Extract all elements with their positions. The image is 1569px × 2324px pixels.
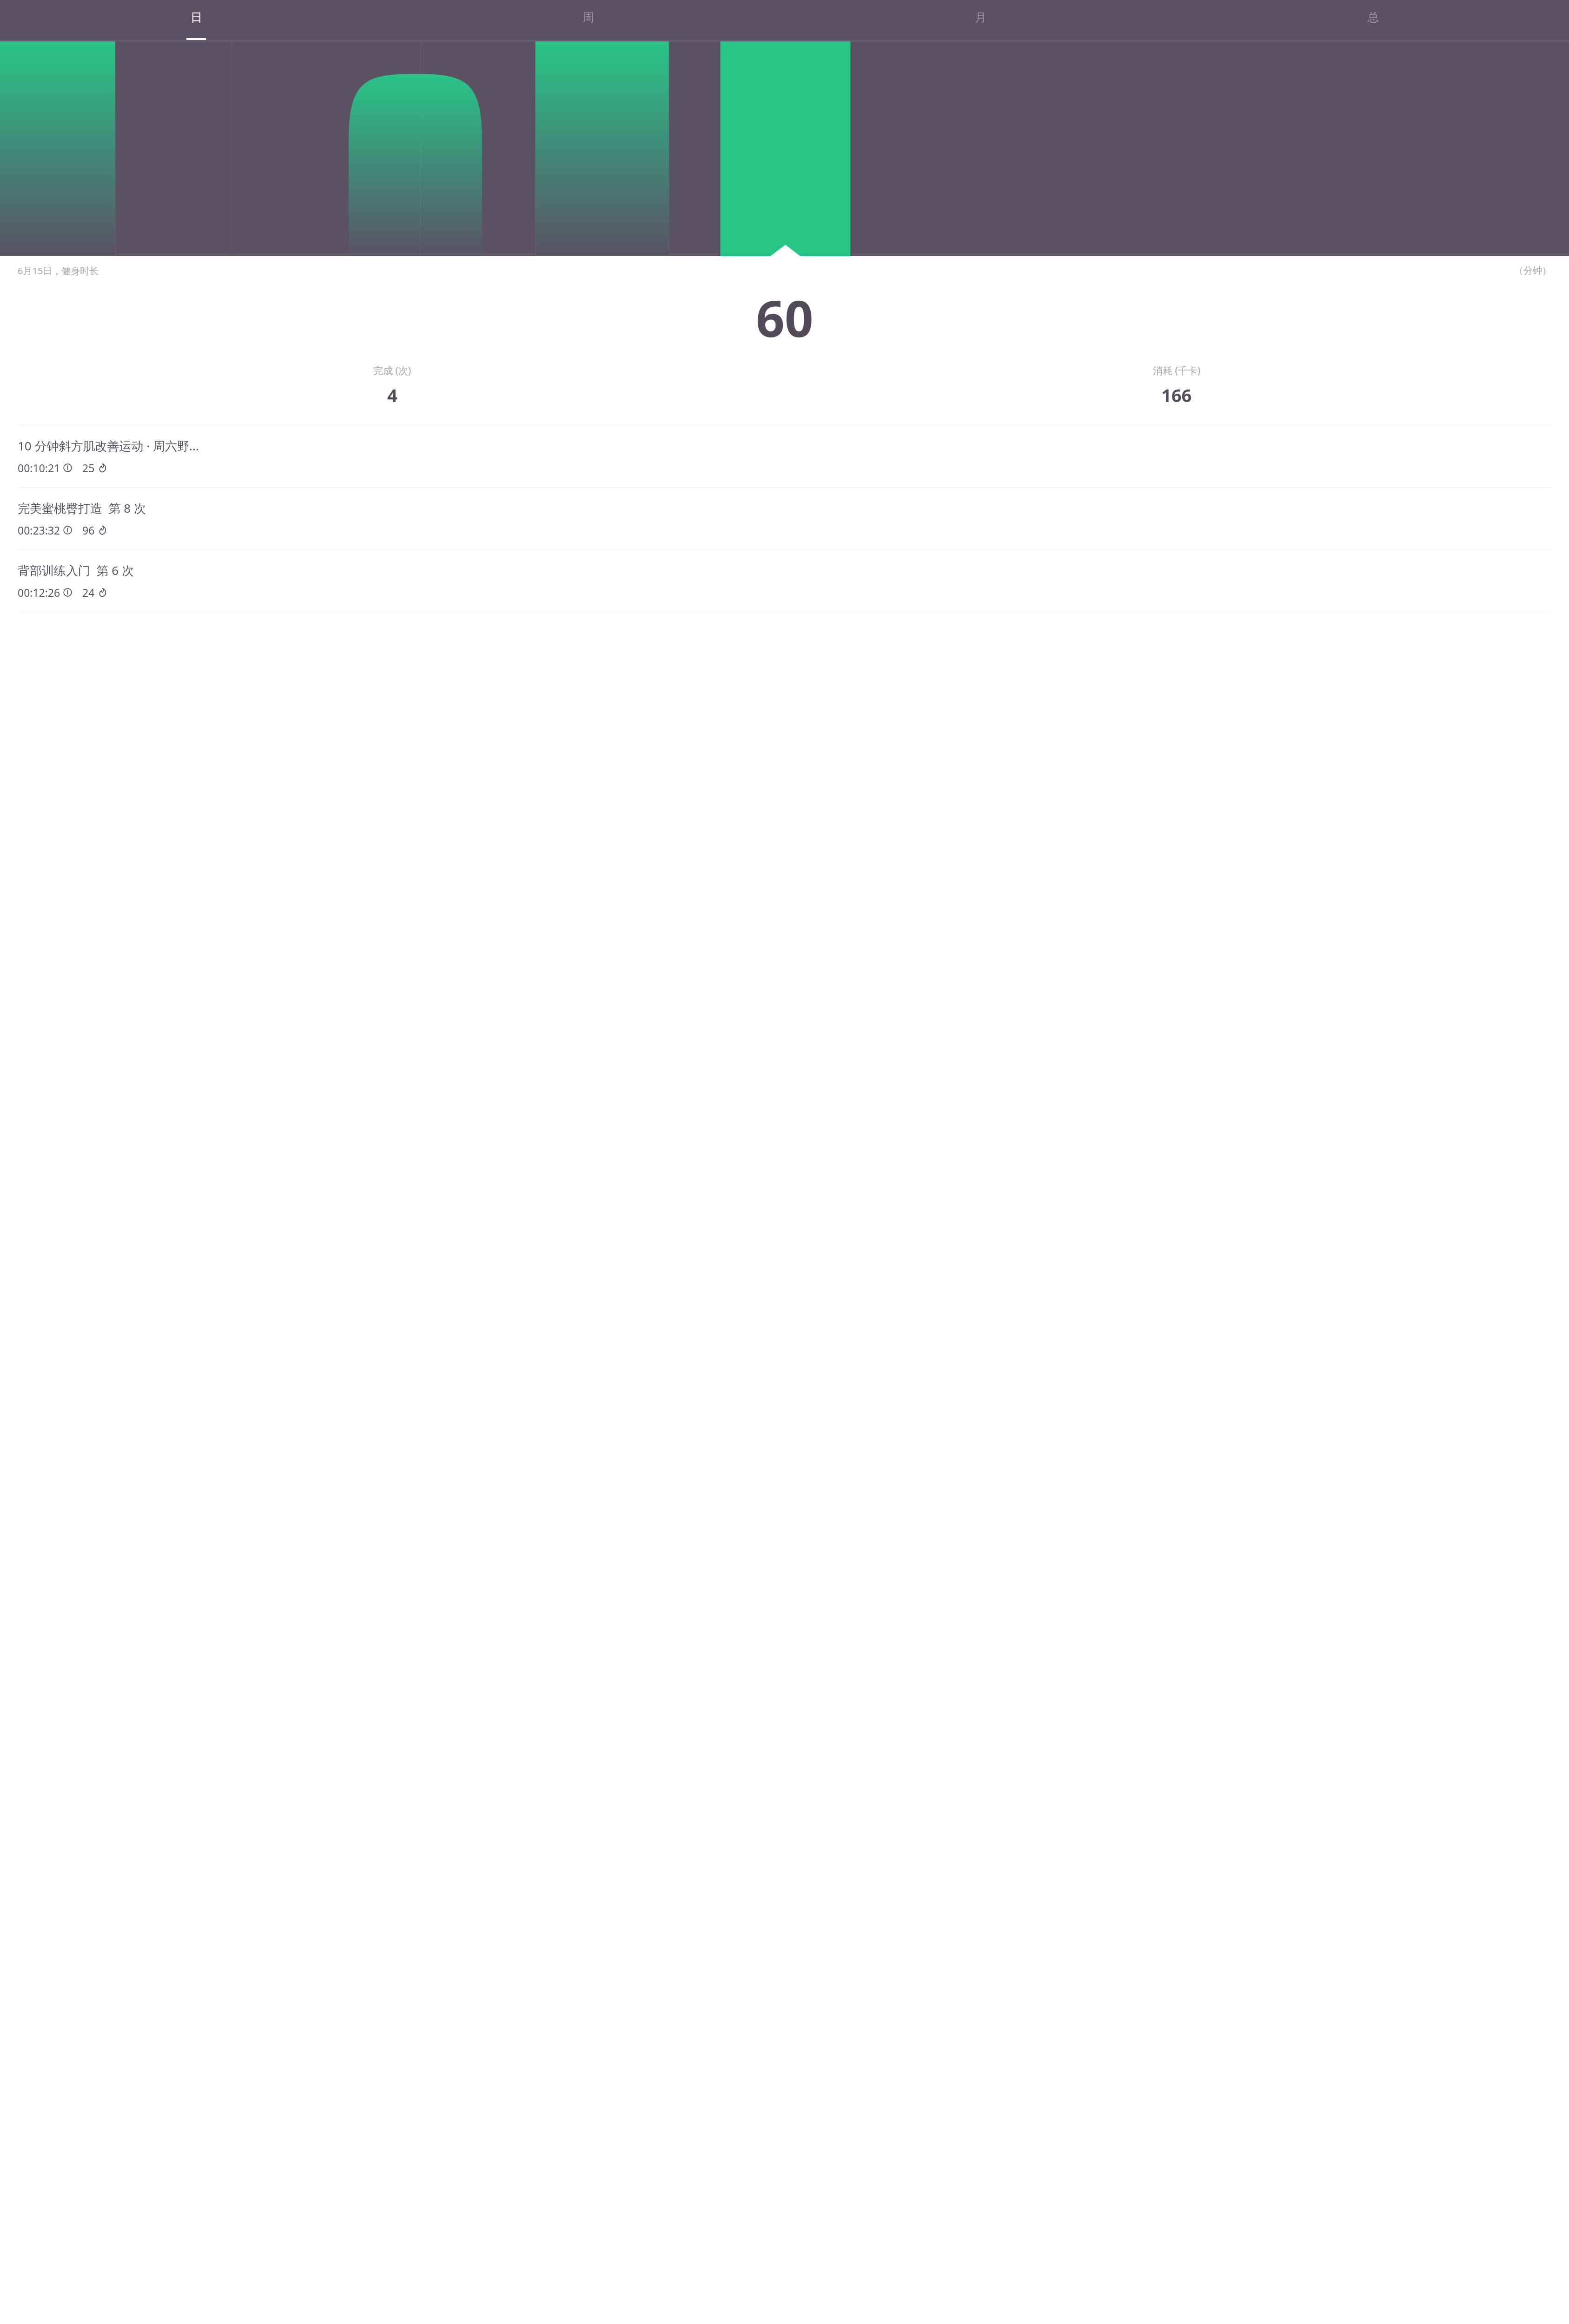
staticText: （分钟） — [1514, 265, 1551, 277]
staticText: 00:10:21 — [18, 461, 60, 475]
button[interactable]: 月 — [784, 0, 1177, 41]
staticText: 96 — [82, 523, 95, 537]
staticText: 周 — [583, 10, 594, 25]
button[interactable]: 总 — [1177, 0, 1569, 41]
staticText: 4 — [387, 383, 397, 407]
staticText: 00:23:32 — [18, 523, 60, 537]
staticText: 60 — [756, 284, 814, 352]
staticText: 消耗 (千卡) — [1153, 364, 1201, 377]
staticText: 日 — [191, 10, 202, 25]
staticText: 6月15日，健身时长 — [18, 264, 99, 277]
staticText: 24 — [82, 585, 95, 600]
button[interactable]: 日 — [0, 0, 392, 41]
staticText: 背部训练入门 第 6 次 — [18, 562, 134, 579]
button[interactable]: 消耗 (千卡) — [784, 364, 1569, 407]
staticText: 总 — [1367, 10, 1379, 25]
staticText: 10 分钟斜方肌改善运动 · 周六野... — [18, 437, 199, 454]
button[interactable]: 周 — [392, 0, 784, 41]
button[interactable]: 10 分钟斜方肌改善运动 · 周六野... — [0, 425, 1569, 487]
staticText: 完美蜜桃臀打造 第 8 次 — [18, 500, 146, 516]
button[interactable]: 完成 (次) — [0, 364, 784, 407]
staticText: 完成 (次) — [373, 364, 411, 377]
staticText: 25 — [82, 461, 95, 475]
staticText: 月 — [975, 10, 986, 25]
staticText: 00:12:26 — [18, 585, 60, 600]
button[interactable]: Daily fitness chart — [0, 41, 1569, 256]
staticText: 166 — [1161, 383, 1192, 407]
button[interactable]: 背部训练入门 第 6 次 — [0, 550, 1569, 612]
button[interactable]: 完美蜜桃臀打造 第 8 次 — [0, 488, 1569, 549]
